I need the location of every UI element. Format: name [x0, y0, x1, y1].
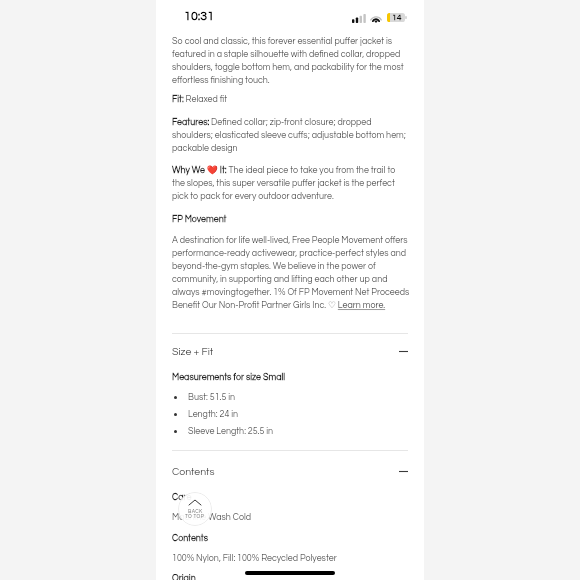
staticText: Origin [172, 574, 196, 580]
staticText: BACK [188, 509, 203, 514]
staticText: Care [172, 493, 192, 502]
staticText: Features: Defined collar; zip-front clos… [172, 118, 410, 153]
staticText: Fit: Relaxed fit [172, 95, 228, 104]
button[interactable]: Back to top [178, 492, 212, 526]
staticText: A destination for life well-lived, Free … [172, 236, 410, 311]
staticText: Sleeve Length: 25.5 in [188, 427, 274, 436]
staticText: Why We ❤️ It: The ideal piece to take yo… [172, 165, 410, 201]
staticText: Measurements for size Small [172, 373, 286, 382]
staticText: Contents [172, 466, 215, 477]
staticText: TO TOP [185, 514, 205, 519]
button[interactable]: Size + Fit [156, 334, 424, 369]
staticText: 100% Nylon, Fill: 100% Recycled Polyeste… [172, 554, 337, 563]
staticText: Size + Fit [172, 346, 214, 357]
staticText: 14 [392, 13, 402, 22]
staticText: Length: 24 in [188, 410, 239, 419]
staticText: Bust: 51.5 in [188, 393, 236, 402]
staticText: FP Movement [172, 215, 227, 224]
staticText: So cool and classic, this forever essent… [172, 37, 410, 85]
button[interactable]: Contents [156, 451, 424, 489]
staticText: Contents [172, 534, 208, 543]
staticText: 10:31 [184, 10, 215, 23]
staticText: Machine Wash Cold [172, 513, 252, 522]
